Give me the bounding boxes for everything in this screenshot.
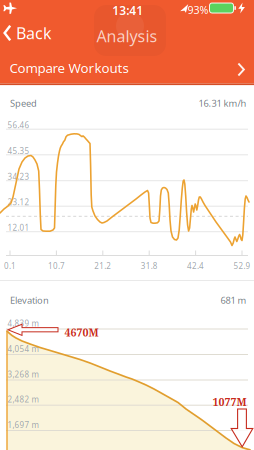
staticText: Compare Workouts — [9, 59, 128, 77]
staticText: 52.9 — [233, 260, 250, 271]
staticText: 0.1 — [4, 260, 16, 271]
staticText: 23.12 — [7, 197, 29, 207]
staticText: 12.01 — [7, 222, 29, 233]
staticText: 2,482 m — [7, 394, 38, 405]
staticText: Elevation — [10, 294, 49, 306]
staticText: 56.46 — [7, 120, 29, 130]
button[interactable]: Back — [3, 20, 59, 46]
staticText: 3,268 m — [7, 369, 38, 380]
staticText: 31.8 — [141, 260, 158, 271]
button[interactable]: Compare Workouts — [0, 52, 254, 84]
staticText: Speed — [10, 97, 37, 109]
staticText: 93% — [187, 3, 208, 17]
staticText: 681 m — [220, 294, 246, 306]
staticText: 10.7 — [48, 260, 65, 271]
staticText: 42.4 — [187, 260, 204, 271]
staticText: 16.31 km/h — [198, 97, 246, 109]
staticText: 4670M — [64, 325, 98, 339]
staticText: 13:41 — [112, 2, 143, 18]
staticText: 45.35 — [7, 145, 29, 156]
staticText: Analysis — [96, 25, 157, 47]
staticText: 4,839 m — [7, 318, 38, 329]
staticText: 21.2 — [94, 260, 111, 271]
staticText: 1,697 m — [7, 419, 38, 430]
staticText: Back — [16, 22, 52, 44]
staticText: 1077M — [212, 394, 246, 409]
staticText: 4,054 m — [7, 343, 38, 354]
staticText: 34.23 — [7, 171, 29, 182]
